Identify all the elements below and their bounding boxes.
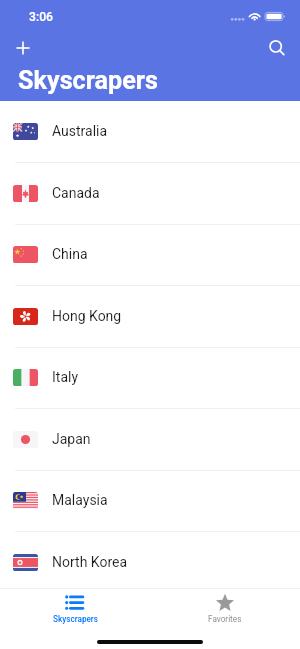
button[interactable]: Malaysia: [0, 470, 300, 532]
staticText: North Korea: [52, 554, 128, 570]
staticText: Japan: [52, 431, 91, 447]
button[interactable]: Italy: [0, 347, 300, 409]
button[interactable]: Hong Kong: [0, 286, 300, 348]
staticText: Italy: [52, 369, 79, 385]
staticText: Hong Kong: [52, 308, 122, 324]
staticText: Skyscrapers: [53, 614, 98, 624]
button[interactable]: Search: [261, 33, 291, 63]
button[interactable]: Favorites: [150, 589, 300, 625]
staticText: 3:06: [29, 10, 53, 24]
button[interactable]: Japan: [0, 409, 300, 471]
staticText: Skyscrapers: [18, 66, 158, 96]
button[interactable]: North Korea: [0, 532, 300, 594]
button[interactable]: Skyscrapers: [0, 589, 150, 625]
button[interactable]: Add: [8, 33, 38, 63]
button[interactable]: China: [0, 224, 300, 286]
staticText: Canada: [52, 185, 100, 201]
button[interactable]: Canada: [0, 163, 300, 225]
staticText: Malaysia: [52, 492, 108, 508]
button[interactable]: Australia: [0, 101, 300, 163]
staticText: China: [52, 246, 88, 262]
staticText: Australia: [52, 123, 108, 139]
staticText: Favorites: [208, 614, 242, 624]
